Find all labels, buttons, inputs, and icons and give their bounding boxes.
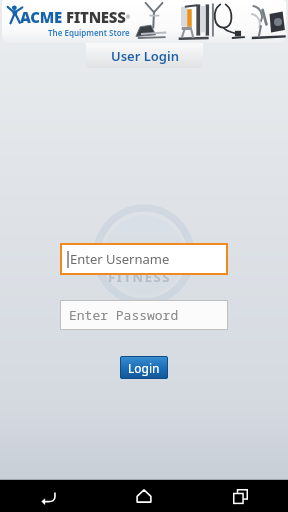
button[interactable]: User Login (86, 43, 203, 68)
staticText: Enter Username (70, 250, 170, 268)
button[interactable]: Login (120, 356, 168, 379)
staticText: The Equipment Store (48, 27, 130, 38)
staticText: Login (128, 360, 160, 376)
staticText: FITNESS (66, 7, 126, 27)
staticText: User Login (111, 47, 179, 65)
button[interactable]: Back (0, 480, 96, 512)
staticText: ACME (20, 7, 62, 27)
button[interactable]: Enter Username (60, 243, 228, 275)
staticText: FITNESS (108, 268, 172, 286)
staticText: ® (126, 14, 131, 21)
staticText: Enter Password (69, 306, 179, 324)
button[interactable]: Home (96, 480, 192, 512)
button[interactable]: Enter Password (60, 300, 228, 330)
button[interactable]: ACME (2, 0, 286, 43)
button[interactable]: Recent apps (192, 480, 288, 512)
